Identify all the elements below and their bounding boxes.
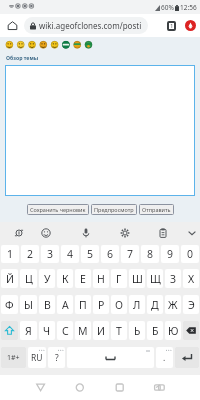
button[interactable]: М [75, 321, 91, 340]
button[interactable]: Emoji 2 [15, 37, 26, 54]
button[interactable]: Г [111, 269, 127, 288]
button[interactable]: Tabs [162, 14, 180, 37]
button[interactable]: Ш [129, 269, 145, 288]
button[interactable]: ? [48, 347, 65, 368]
staticText: А [62, 298, 69, 312]
button[interactable]: Emoji 5 [48, 37, 59, 54]
button[interactable]: 2 [21, 245, 39, 263]
staticText: Предпросмотр [94, 206, 134, 213]
button[interactable]: 9 [161, 245, 179, 263]
button[interactable]: Э [183, 295, 199, 314]
button[interactable]: И [93, 321, 109, 340]
button[interactable]: Clipboard [134, 222, 167, 244]
staticText: О [115, 298, 123, 312]
button[interactable]: Settings [101, 222, 134, 244]
button[interactable]: З [165, 269, 181, 288]
staticText: К [62, 272, 69, 286]
button[interactable]: Сохранить черновик [27, 204, 89, 215]
button[interactable]: Emoji 6 [59, 37, 70, 54]
button[interactable]: Emoji 4 [37, 37, 48, 54]
button[interactable]: Б [147, 321, 163, 340]
button[interactable]: Ю [165, 321, 181, 340]
button[interactable]: Text area [5, 65, 195, 196]
button[interactable]: Home [0, 14, 24, 37]
staticText: 5 [87, 247, 94, 261]
staticText: Щ [150, 272, 161, 286]
button[interactable]: 5 [81, 245, 99, 263]
button[interactable]: С [57, 321, 73, 340]
button[interactable]: Emoji 8 [81, 37, 92, 54]
staticText: RU [31, 352, 43, 364]
button[interactable]: Home [50, 375, 100, 400]
button[interactable]: Т [111, 321, 127, 340]
button[interactable]: Voice input [68, 222, 101, 244]
button[interactable]: wiki.ageofclones.com/posti [24, 17, 148, 34]
button[interactable]: Hide keyboard [167, 222, 200, 244]
button[interactable]: К [57, 269, 73, 288]
button[interactable]: П [75, 295, 91, 314]
staticText: Обзор темы [6, 54, 39, 61]
button[interactable]: 6 [101, 245, 119, 263]
button[interactable]: У [39, 269, 55, 288]
button[interactable]: Space [67, 347, 154, 368]
button[interactable]: Щ [147, 269, 163, 288]
button[interactable]: В [39, 295, 55, 314]
staticText: Ф [5, 298, 14, 312]
button[interactable]: 1 [1, 245, 19, 263]
button[interactable]: А [57, 295, 73, 314]
button[interactable]: Ч [39, 321, 55, 340]
staticText: Ч [43, 324, 51, 338]
button[interactable]: Emoji [34, 222, 68, 244]
button[interactable]: О [111, 295, 127, 314]
staticText: В [44, 298, 51, 312]
button[interactable]: Screenshot [150, 375, 200, 400]
staticText: Х [188, 272, 195, 286]
staticText: . [163, 352, 166, 364]
button[interactable]: 3 [41, 245, 59, 263]
button[interactable]: RU [28, 347, 46, 368]
button[interactable]: 1#+ [1, 347, 26, 368]
button[interactable]: Ж [165, 295, 181, 314]
staticText: Я [25, 324, 32, 338]
staticText: ? [55, 352, 59, 364]
button[interactable]: 8 [141, 245, 159, 263]
staticText: Э [188, 298, 195, 312]
staticText: Отправить [142, 206, 171, 213]
button[interactable]: Emoji 1 [4, 37, 15, 54]
button[interactable]: Ф [1, 295, 18, 314]
staticText: Р [98, 298, 105, 312]
button[interactable]: Emoji 7 [70, 37, 81, 54]
button[interactable]: Е [75, 269, 91, 288]
staticText: Н [97, 272, 105, 286]
button[interactable]: Предпросмотр [91, 204, 137, 215]
button[interactable]: Л [129, 295, 145, 314]
staticText: Ы [24, 298, 33, 312]
staticText: Л [133, 298, 141, 312]
button[interactable]: Ь [129, 321, 145, 340]
staticText: 1 [7, 247, 14, 261]
button[interactable]: Clipboard history [0, 222, 34, 244]
button[interactable]: Shift [1, 321, 18, 340]
button[interactable]: Ы [20, 295, 37, 314]
button[interactable]: Back [0, 375, 50, 400]
button[interactable]: Д [147, 295, 163, 314]
button[interactable]: Р [93, 295, 109, 314]
button[interactable]: Н [93, 269, 109, 288]
button[interactable]: Enter [175, 347, 199, 368]
staticText: Б [152, 324, 159, 338]
staticText: С [62, 324, 69, 338]
button[interactable]: 7 [121, 245, 139, 263]
button[interactable]: Menu [180, 14, 200, 37]
button[interactable]: Backspace [183, 321, 199, 340]
button[interactable]: Я [20, 321, 37, 340]
staticText: Е [80, 272, 86, 286]
button[interactable]: 0 [181, 245, 199, 263]
button[interactable]: . [156, 347, 173, 368]
button[interactable]: Ц [20, 269, 37, 288]
button[interactable]: Отправить [139, 204, 174, 215]
button[interactable]: Х [183, 269, 199, 288]
button[interactable]: Recents [100, 375, 150, 400]
button[interactable]: 4 [61, 245, 79, 263]
button[interactable]: Emoji 3 [26, 37, 37, 54]
button[interactable]: Й [1, 269, 18, 288]
